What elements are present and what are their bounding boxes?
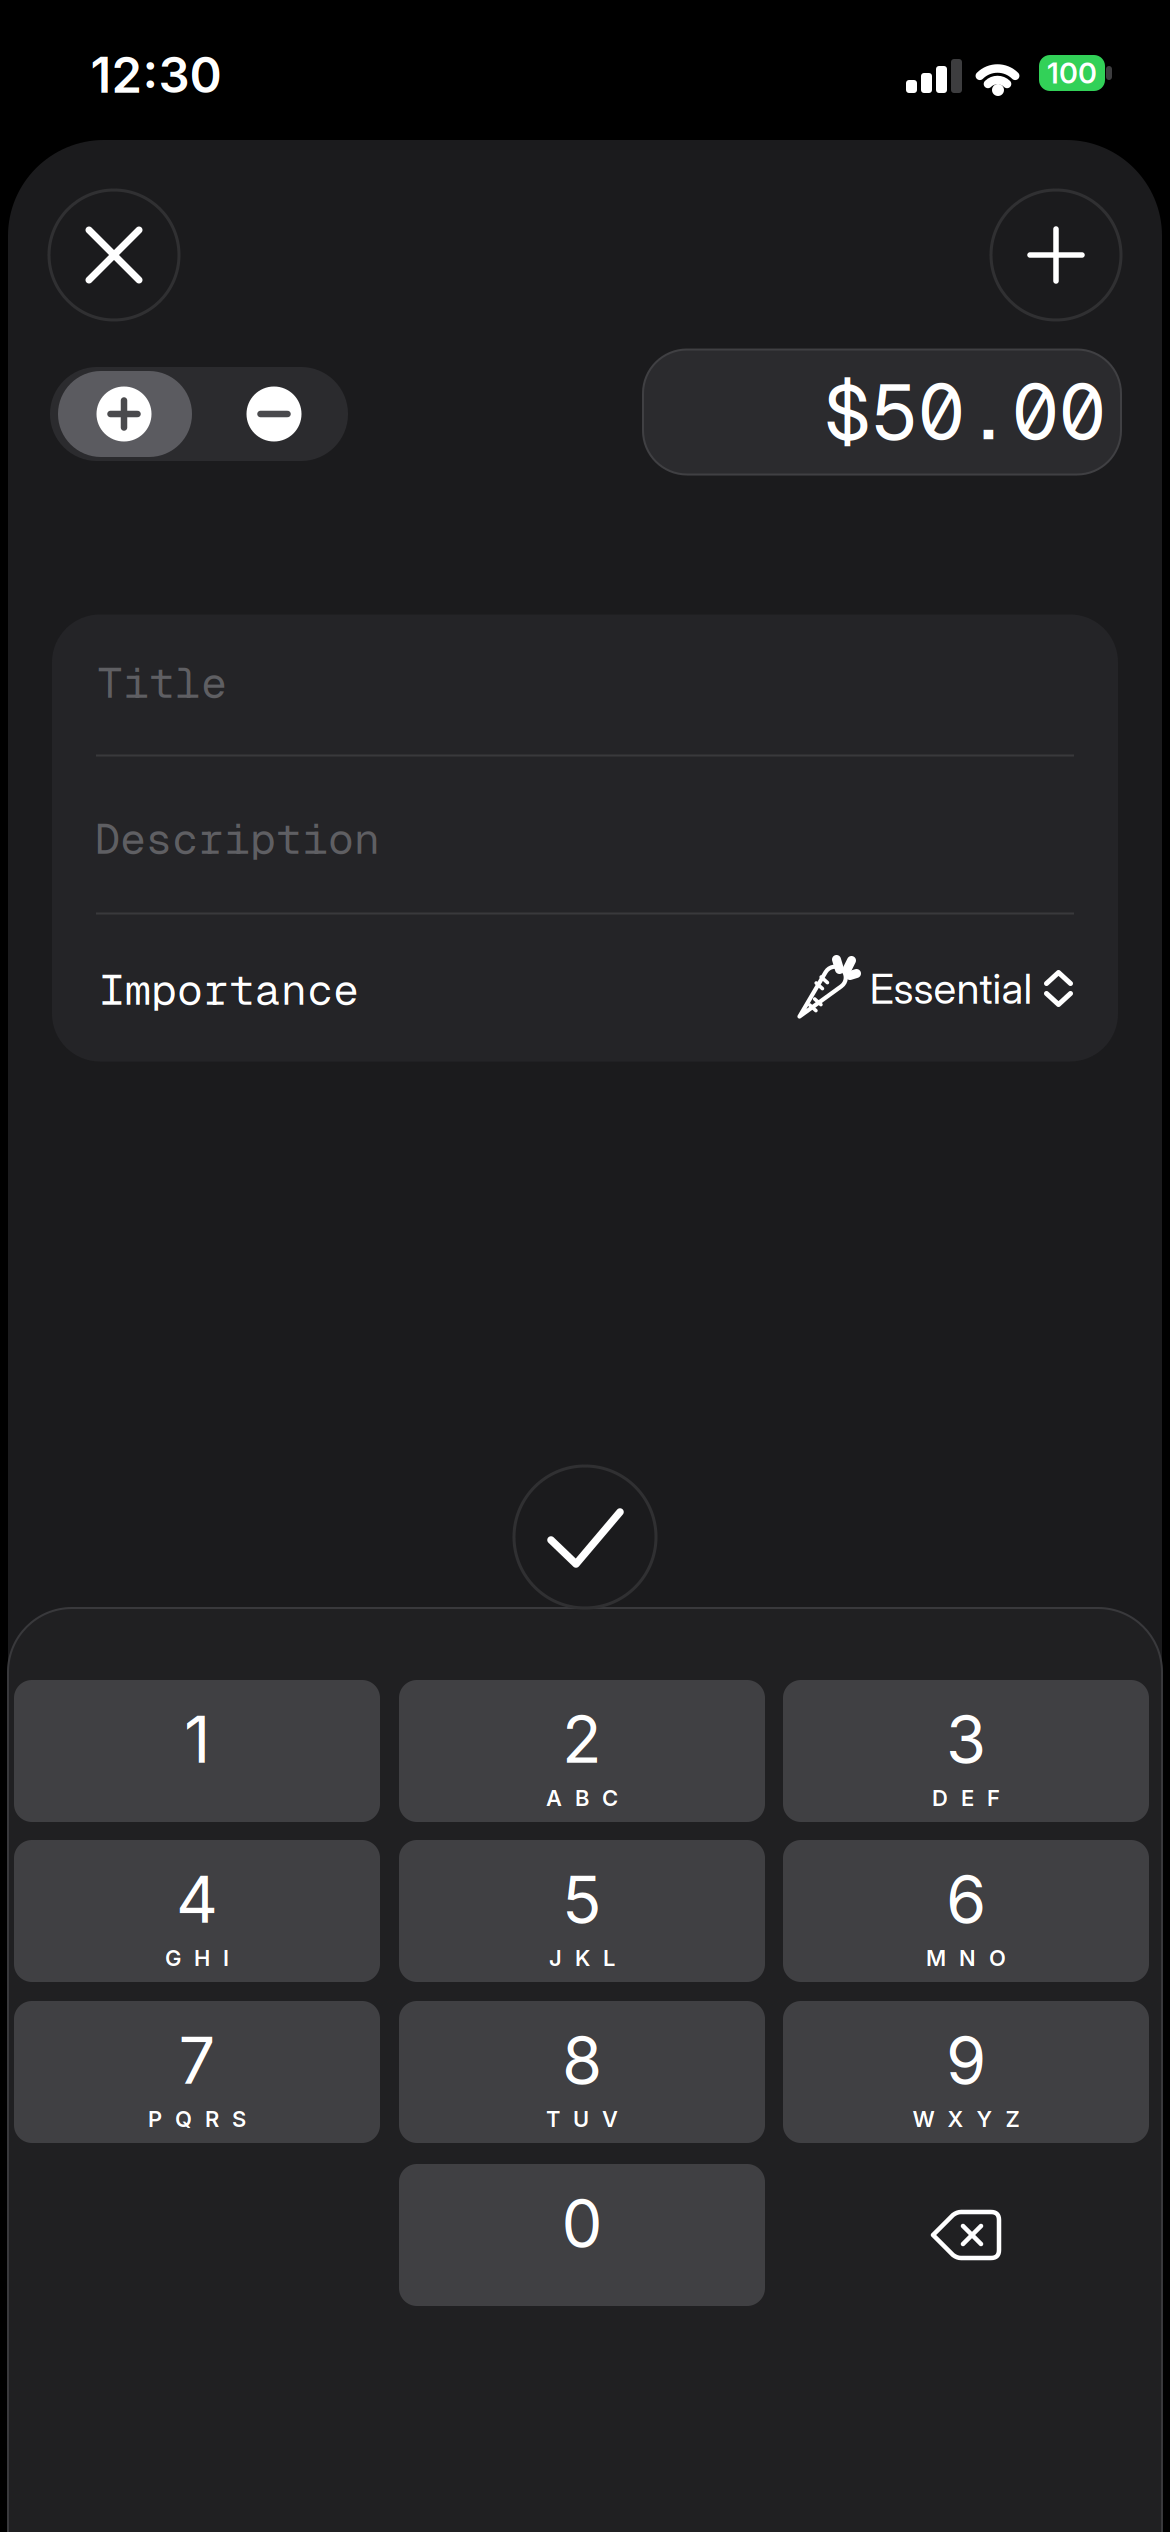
button[interactable]: 7 bbox=[14, 2001, 380, 2143]
staticText: Title bbox=[97, 655, 227, 710]
button[interactable]: Close bbox=[49, 190, 179, 320]
button[interactable]: 4 bbox=[14, 1840, 380, 1982]
staticText: M N O bbox=[926, 1945, 1006, 1971]
button[interactable]: Importance picker bbox=[793, 956, 1072, 1020]
staticText: 8 bbox=[562, 2021, 602, 2099]
staticText: D E F bbox=[932, 1785, 1000, 1811]
staticText: 100 bbox=[1047, 55, 1097, 91]
button[interactable]: 0 bbox=[399, 2164, 765, 2306]
staticText: T U V bbox=[546, 2106, 618, 2132]
button[interactable]: 1 bbox=[14, 1680, 380, 1822]
button[interactable]: 5 bbox=[399, 1840, 765, 1982]
staticText: G H I bbox=[165, 1945, 229, 1971]
button[interactable]: 9 bbox=[783, 2001, 1149, 2143]
button[interactable]: Add bbox=[991, 190, 1121, 320]
staticText: P Q R S bbox=[148, 2106, 246, 2132]
button[interactable]: 6 bbox=[783, 1840, 1149, 1982]
staticText: W X Y Z bbox=[912, 2106, 1019, 2132]
button[interactable]: Confirm bbox=[514, 1466, 656, 1608]
staticText: 3 bbox=[946, 1700, 986, 1778]
staticText: A B C bbox=[546, 1785, 618, 1811]
button[interactable]: 8 bbox=[399, 2001, 765, 2143]
staticText: 7 bbox=[178, 2021, 215, 2099]
button[interactable]: Income bbox=[246, 386, 301, 441]
staticText: Essential bbox=[869, 963, 1032, 1014]
staticText: 1 bbox=[184, 1700, 210, 1778]
button[interactable]: Expense bbox=[96, 386, 151, 441]
staticText: 9 bbox=[946, 2021, 986, 2099]
button[interactable]: Title bbox=[52, 614, 1118, 754]
staticText: 4 bbox=[176, 1860, 218, 1938]
button[interactable]: Description bbox=[52, 757, 1118, 913]
button[interactable]: Amount bbox=[643, 349, 1121, 474]
button[interactable]: 2 bbox=[399, 1680, 765, 1822]
staticText: 12:30 bbox=[90, 45, 221, 105]
staticText: $50.00 bbox=[824, 361, 1106, 462]
button[interactable]: Delete bbox=[783, 2164, 1149, 2306]
staticText: Importance bbox=[99, 962, 359, 1017]
staticText: 0 bbox=[561, 2184, 602, 2262]
staticText: Description bbox=[94, 811, 380, 866]
staticText: 5 bbox=[562, 1860, 602, 1938]
staticText: 2 bbox=[562, 1700, 602, 1778]
staticText: J K L bbox=[549, 1945, 615, 1971]
staticText: 6 bbox=[946, 1860, 986, 1938]
button[interactable]: 3 bbox=[783, 1680, 1149, 1822]
